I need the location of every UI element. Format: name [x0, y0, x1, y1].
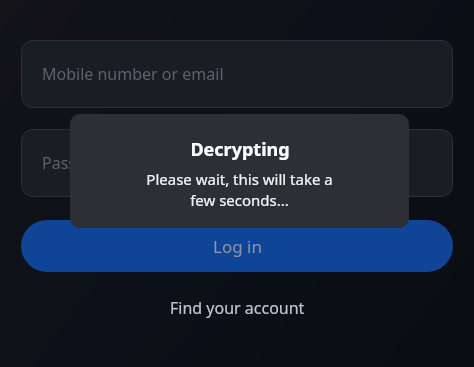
- staticText: Password: [42, 152, 115, 174]
- other: Decrypting, please wait: [70, 114, 409, 228]
- button[interactable]: Find your account: [0, 291, 474, 325]
- staticText: Please wait, this will take a few second…: [70, 169, 409, 211]
- button[interactable]: Password: [21, 129, 453, 197]
- staticText: Log in: [213, 235, 262, 258]
- button[interactable]: Log in: [21, 220, 453, 272]
- button[interactable]: Mobile number or email: [21, 40, 453, 108]
- staticText: Decrypting: [190, 137, 290, 162]
- staticText: Mobile number or email: [42, 63, 224, 85]
- staticText: Find your account: [170, 297, 305, 319]
